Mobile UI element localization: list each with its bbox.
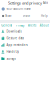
staticText: Alerts: [28, 24, 36, 27]
button[interactable]: Invite: [22, 12, 30, 20]
button[interactable]: General: [1, 23, 12, 28]
staticText: Privacy: [16, 24, 24, 27]
button[interactable]: Storage: [0, 55, 50, 62]
staticText: Downloads: [6, 30, 21, 33]
staticText: Settings and privacy: [8, 0, 42, 6]
staticText: Edit: [43, 1, 48, 5]
staticText: Hands Up: [6, 50, 19, 53]
staticText: About: [40, 24, 49, 27]
button[interactable]: Your account name: [0, 6, 50, 12]
staticText: Gesture data: [6, 36, 23, 40]
staticText: Invite: [22, 14, 30, 18]
button[interactable]: About: [40, 23, 49, 28]
button[interactable]: Downloads: [0, 28, 50, 35]
staticText: Help: [41, 14, 48, 18]
button[interactable]: Privacy: [16, 23, 24, 28]
button[interactable]: Hands Up: [0, 48, 50, 55]
button[interactable]: Alerts: [28, 23, 36, 28]
staticText: General: [1, 24, 12, 27]
staticText: Your account name: [6, 7, 31, 11]
button[interactable]: Edit: [43, 0, 50, 6]
button[interactable]: App reminders: [0, 42, 50, 48]
staticText: Storage: [6, 57, 16, 60]
staticText: Share: [5, 14, 12, 18]
staticText: App reminders: [6, 43, 27, 47]
button[interactable]: Gesture data: [0, 35, 50, 42]
button[interactable]: Share: [2, 12, 12, 20]
button[interactable]: Help: [41, 12, 48, 20]
